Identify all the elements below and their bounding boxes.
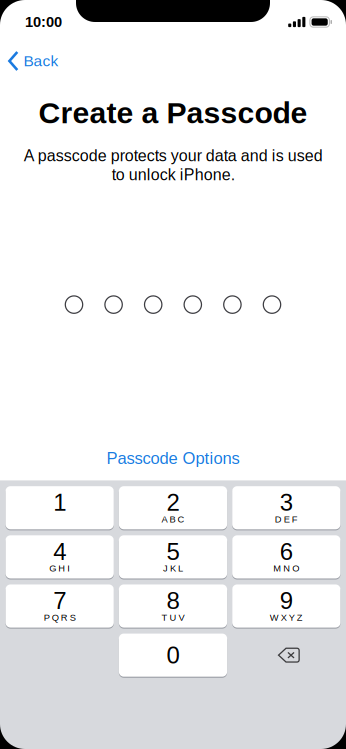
staticText: DEF: [275, 514, 298, 524]
staticText: PQRS: [44, 612, 76, 623]
staticText: 10:00: [25, 14, 62, 30]
staticText: 4: [53, 538, 66, 565]
button[interactable]: 0: [119, 634, 227, 677]
staticText: WXYZ: [270, 612, 303, 623]
button[interactable]: 1: [5, 486, 114, 529]
staticText: MNO: [273, 563, 299, 573]
button[interactable]: 9: [232, 584, 340, 628]
staticText: 3: [280, 489, 293, 516]
staticText: 2: [166, 489, 179, 516]
staticText: JKL: [163, 563, 183, 573]
staticText: 8: [166, 587, 179, 614]
staticText: Back: [24, 52, 59, 70]
button[interactable]: 5: [119, 535, 227, 578]
button[interactable]: 3: [232, 486, 340, 529]
staticText: GHI: [49, 563, 70, 573]
staticText: Create a Passcode: [38, 96, 307, 130]
staticText: 0: [166, 642, 179, 668]
button[interactable]: Delete: [232, 634, 340, 677]
staticText: 1: [53, 489, 66, 516]
staticText: 5: [166, 538, 179, 565]
staticText: Passcode Options: [106, 449, 239, 467]
staticText: ABC: [161, 514, 184, 524]
button[interactable]: Back: [0, 47, 67, 75]
staticText: 6: [280, 538, 293, 565]
staticText: 7: [53, 587, 66, 614]
button[interactable]: 4: [5, 535, 114, 578]
button[interactable]: Passcode Options: [0, 444, 346, 472]
button[interactable]: 6: [232, 535, 340, 578]
staticText: 9: [280, 587, 293, 614]
button[interactable]: 7: [5, 584, 114, 628]
staticText: A passcode protects your data and is use…: [23, 147, 322, 184]
button[interactable]: 8: [119, 584, 227, 628]
button[interactable]: 2: [119, 486, 227, 529]
staticText: TUV: [161, 612, 184, 623]
